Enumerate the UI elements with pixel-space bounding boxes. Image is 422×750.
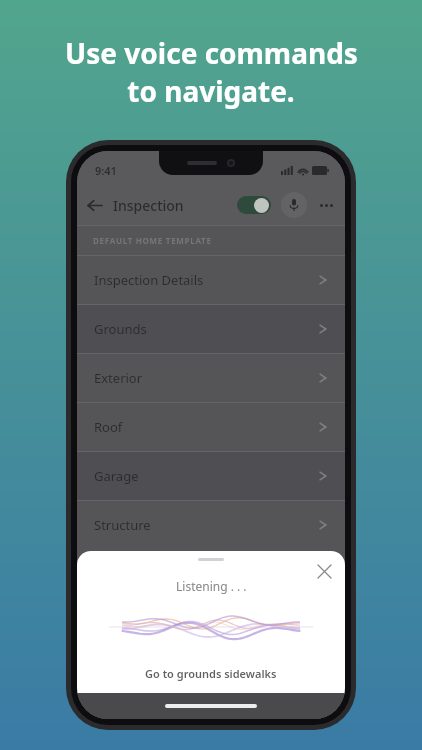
staticText: Go to grounds sidewalks xyxy=(145,666,277,681)
staticText: Inspection xyxy=(113,196,184,215)
button[interactable]: Exterior xyxy=(77,354,345,402)
button[interactable]: Close xyxy=(311,558,337,584)
button[interactable]: Back xyxy=(77,188,111,222)
staticText: Garage xyxy=(94,467,139,485)
button[interactable]: Structure xyxy=(77,501,345,549)
button[interactable]: Grounds xyxy=(77,305,345,353)
button[interactable]: Toggle xyxy=(237,196,271,214)
staticText: to navigate. xyxy=(127,72,295,110)
staticText: Roof xyxy=(94,418,123,436)
staticText: Inspection Details xyxy=(94,271,204,289)
staticText: Listening . . . xyxy=(176,578,247,594)
staticText: Grounds xyxy=(94,320,147,338)
button[interactable]: Roof xyxy=(77,403,345,451)
staticText: DEFAULT HOME TEMPLATE xyxy=(93,235,212,246)
staticText: Structure xyxy=(94,516,151,534)
button[interactable]: Inspection Details xyxy=(77,256,345,304)
button[interactable]: Garage xyxy=(77,452,345,500)
button[interactable]: More options xyxy=(313,192,339,218)
staticText: 9:41 xyxy=(95,163,117,178)
button[interactable]: Voice input xyxy=(281,192,307,218)
staticText: Use voice commands xyxy=(65,34,358,72)
staticText: Exterior xyxy=(94,369,143,387)
